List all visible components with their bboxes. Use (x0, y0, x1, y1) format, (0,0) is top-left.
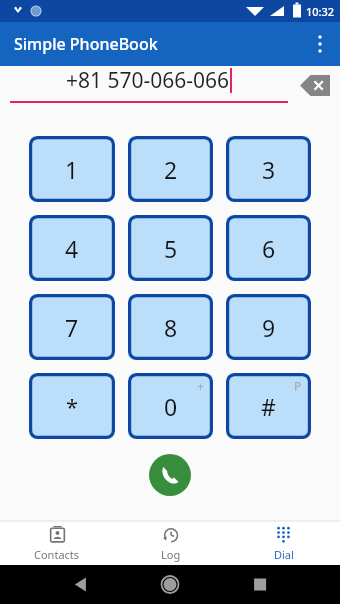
staticText: 1 (65, 154, 79, 185)
button[interactable]: 1 (29, 136, 115, 202)
staticText: 10:32 (306, 4, 335, 19)
staticText: +81 570-066-066 (66, 66, 230, 95)
button[interactable]: 3 (226, 136, 311, 202)
button[interactable]: * (29, 373, 115, 439)
staticText: Log (161, 547, 181, 562)
staticText: 8 (164, 312, 178, 343)
staticText: 2 (164, 154, 178, 185)
staticText: 0 (164, 391, 178, 422)
button[interactable]: Call (149, 454, 191, 496)
button[interactable]: 9 (226, 294, 311, 360)
button[interactable]: # (226, 373, 311, 439)
button[interactable]: Log (114, 521, 227, 565)
staticText: Contacts (34, 547, 80, 562)
staticText: 7 (65, 312, 79, 343)
button[interactable]: 7 (29, 294, 115, 360)
staticText: 6 (262, 233, 276, 264)
staticText: P (294, 378, 302, 394)
staticText: 5 (164, 233, 178, 264)
button[interactable]: 6 (226, 215, 311, 281)
staticText: Simple PhoneBook (14, 33, 158, 55)
button[interactable]: Contacts (0, 521, 114, 565)
button[interactable]: 5 (128, 215, 213, 281)
staticText: * (66, 391, 79, 421)
button[interactable]: Backspace (298, 70, 332, 100)
staticText: 9 (262, 312, 276, 343)
staticText: + (197, 378, 204, 394)
button[interactable]: 0 (128, 373, 213, 439)
button[interactable]: 4 (29, 215, 115, 281)
button[interactable]: Dial (227, 521, 340, 565)
staticText: Dial (274, 547, 294, 562)
button[interactable]: 2 (128, 136, 213, 202)
staticText: 3 (262, 154, 276, 185)
button[interactable]: 8 (128, 294, 213, 360)
staticText: 4 (65, 233, 79, 264)
staticText: # (261, 391, 276, 422)
button[interactable]: More options (300, 24, 340, 64)
